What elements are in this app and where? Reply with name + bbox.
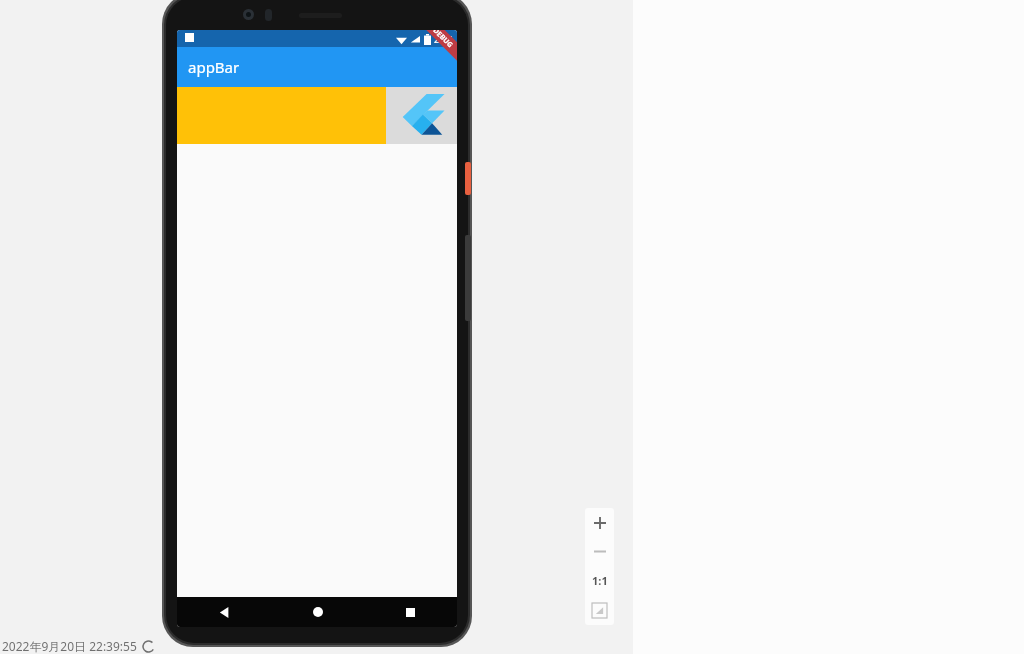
staticText: 1:1 (592, 573, 608, 588)
button[interactable]: Back (177, 597, 271, 627)
button[interactable]: Power button (465, 162, 471, 195)
button[interactable]: Refresh (143, 641, 154, 652)
staticText: 2:37 (434, 33, 452, 45)
button[interactable]: Recent apps (364, 597, 457, 627)
staticText: appBar (188, 57, 240, 77)
staticText: DEBUG (431, 30, 455, 51)
button[interactable]: Zoom in (585, 508, 614, 537)
staticText: 2022年9月20日 22:39:55 (2, 638, 137, 654)
button[interactable]: Home (271, 597, 364, 627)
button[interactable]: Zoom out (585, 537, 614, 566)
button[interactable]: 1:1 (585, 566, 614, 595)
button[interactable]: Flutter logo (386, 87, 457, 144)
button[interactable]: appBar (177, 47, 457, 87)
button[interactable]: Fit to screen (585, 595, 614, 625)
